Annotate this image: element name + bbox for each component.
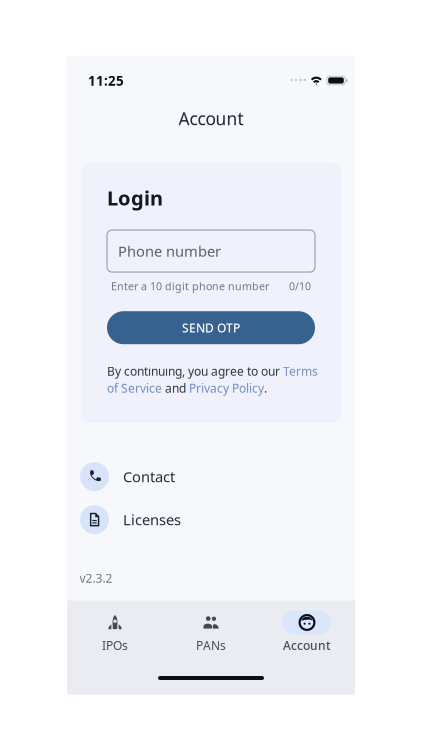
staticText: Enter a 10 digit phone number	[111, 279, 269, 293]
staticText: 11:25	[88, 72, 124, 89]
button[interactable]: IPOs	[67, 610, 163, 653]
staticText: Account	[178, 107, 243, 130]
staticText: Contact	[123, 467, 175, 486]
staticText: v2.3.2	[79, 570, 112, 586]
staticText: 0/10	[289, 279, 311, 293]
staticText: SEND OTP	[182, 320, 240, 336]
staticText: By continuing, you agree to our	[107, 363, 283, 379]
button[interactable]: PANs	[163, 610, 259, 653]
staticText: Licenses	[123, 510, 181, 529]
button[interactable]: Contact	[67, 462, 355, 491]
staticText: IPOs	[102, 637, 128, 653]
staticText: Account	[283, 637, 331, 653]
staticText: Phone number	[118, 241, 221, 261]
staticText: PANs	[196, 637, 226, 653]
staticText: Privacy Policy	[189, 380, 264, 396]
staticText: Terms	[283, 363, 318, 379]
staticText: and	[162, 380, 189, 396]
button[interactable]: SEND OTP	[107, 311, 315, 344]
button[interactable]: Licenses	[67, 505, 355, 534]
button[interactable]: Account	[259, 610, 355, 653]
staticText: .	[264, 380, 267, 396]
staticText: Login	[107, 184, 163, 211]
staticText: of Service	[107, 380, 162, 396]
